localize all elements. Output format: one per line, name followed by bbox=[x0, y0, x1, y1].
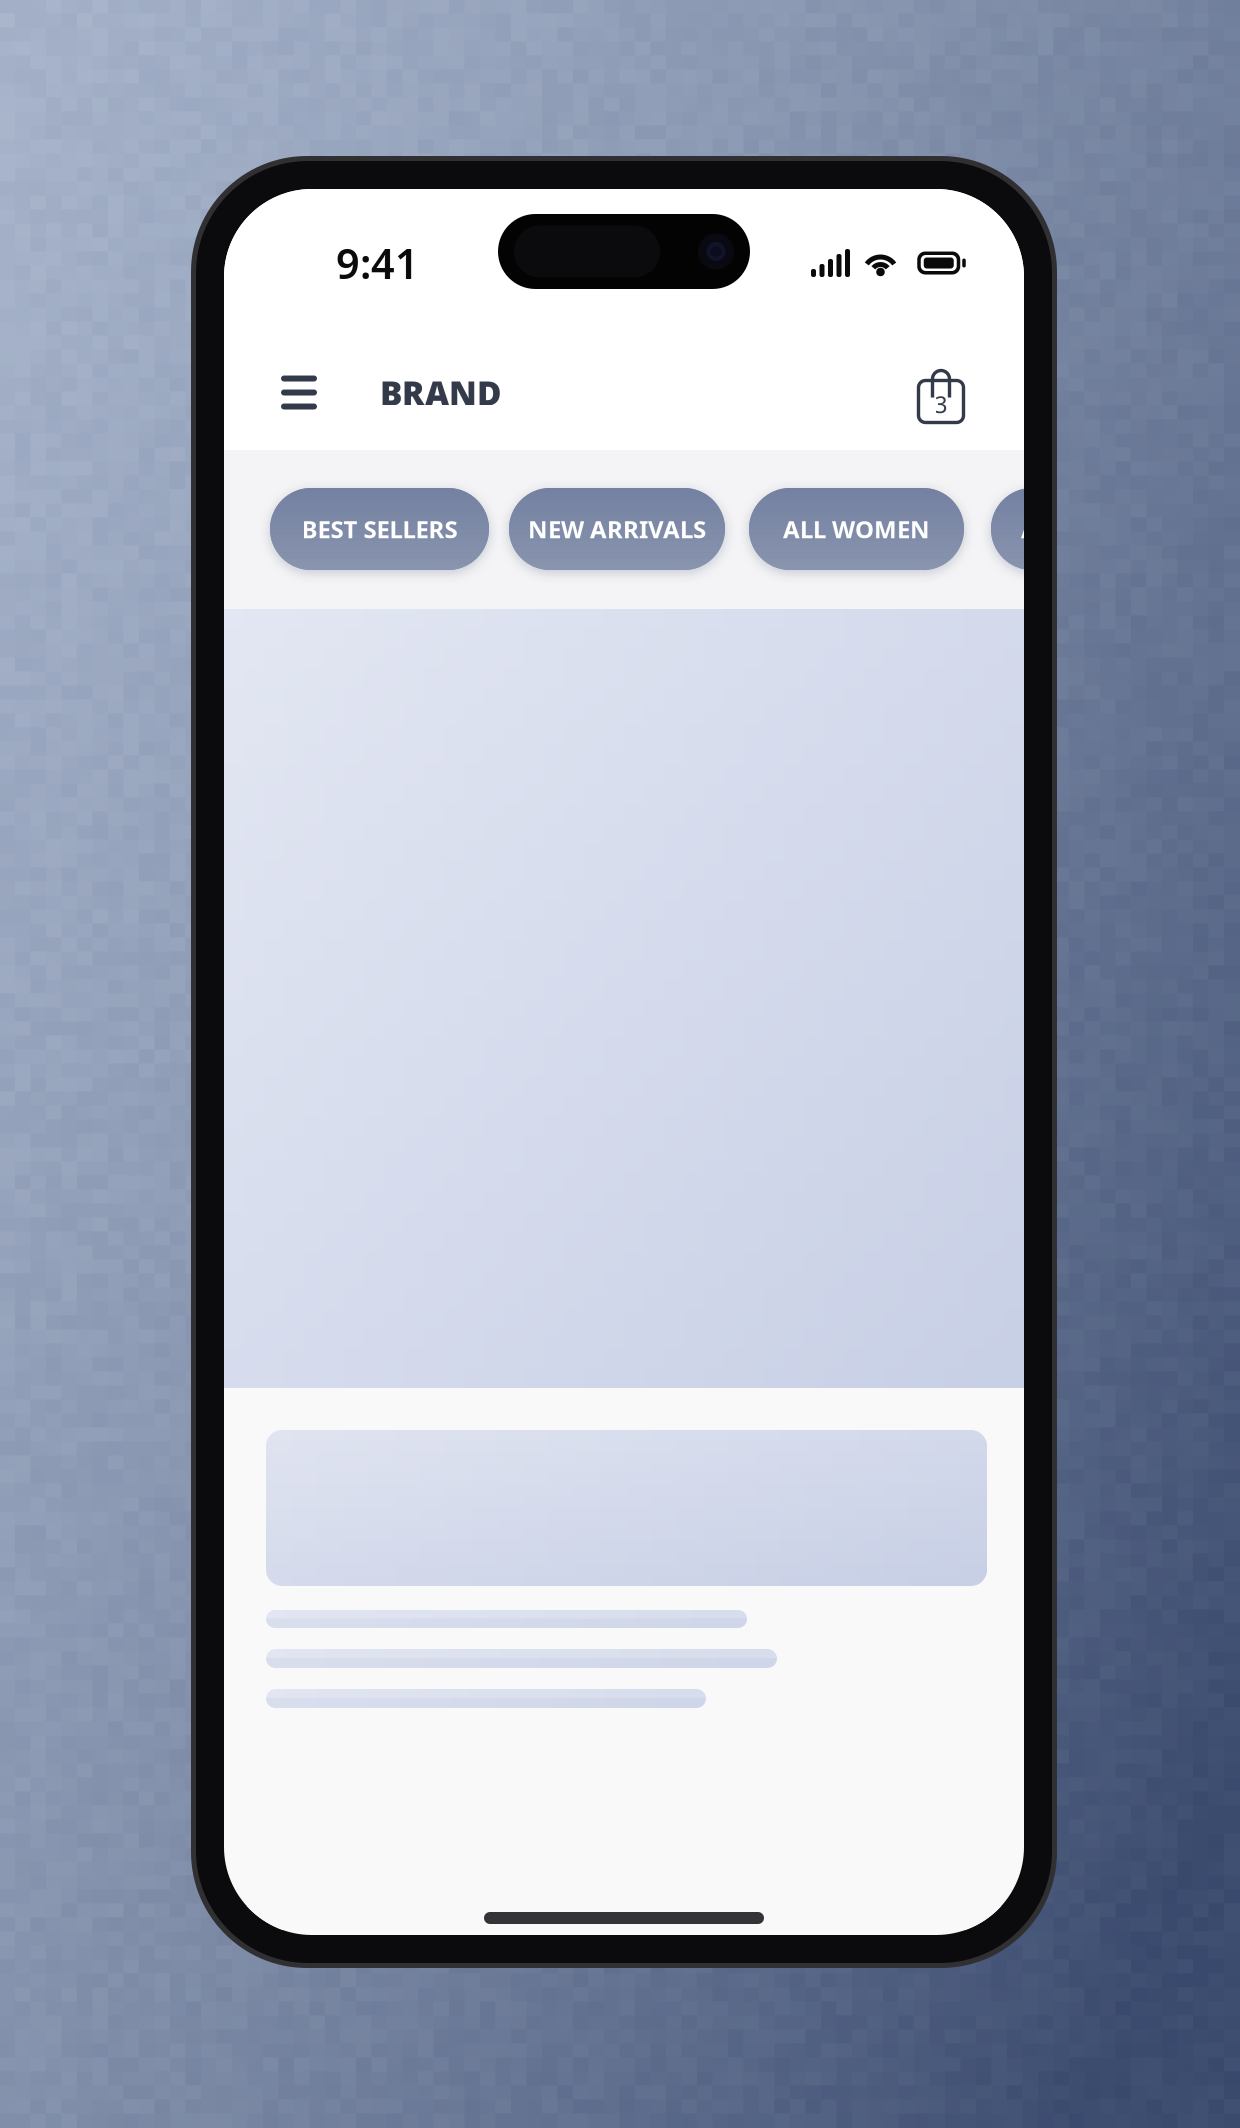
button[interactable]: ACCESSORIES bbox=[991, 488, 1206, 570]
staticText: ALL WOMEN bbox=[783, 513, 930, 545]
staticText: ACCESSORIES bbox=[1021, 513, 1176, 545]
button[interactable]: BRAND bbox=[362, 352, 519, 433]
button[interactable]: Open menu bbox=[268, 357, 330, 427]
staticText: NEW ARRIVALS bbox=[528, 513, 706, 545]
button[interactable]: BEST SELLERS bbox=[270, 488, 489, 570]
staticText: 9:41 bbox=[336, 236, 419, 290]
button[interactable]: Shopping bag, 3 items bbox=[913, 359, 969, 425]
button[interactable]: NEW ARRIVALS bbox=[509, 488, 725, 570]
staticText: 3 bbox=[934, 389, 947, 419]
button[interactable]: ALL WOMEN bbox=[749, 488, 964, 570]
staticText: BEST SELLERS bbox=[301, 513, 457, 545]
staticText: BRAND bbox=[380, 370, 501, 415]
